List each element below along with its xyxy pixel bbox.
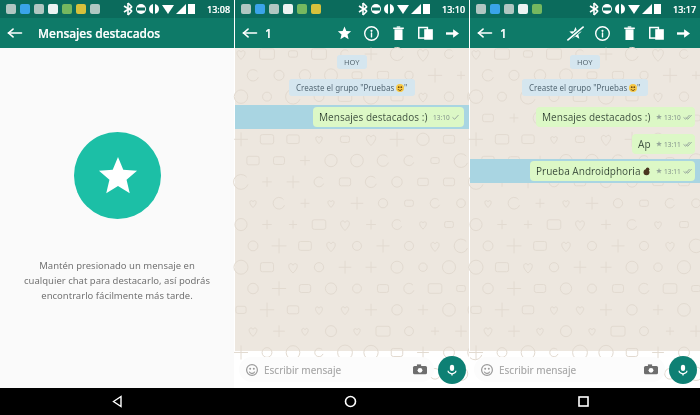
staticText: Mensajes destacados :) [319,110,428,124]
button[interactable]: Delete [616,20,642,46]
button[interactable]: Recents [467,388,700,415]
button[interactable]: Prueba Androidphoria [470,159,700,183]
button[interactable]: Escribir mensaje [474,357,665,382]
staticText: 13:11 [664,140,681,149]
button[interactable]: Star [331,20,357,46]
staticText: 13:08 [207,3,231,15]
button[interactable]: Escribir mensaje [239,357,434,382]
staticText: 13:17 [673,3,697,15]
staticText: HOY [344,57,360,67]
staticText: 1 [265,25,272,41]
button[interactable]: Mensajes destacados :) [235,105,469,129]
other: Camera [644,363,658,377]
button[interactable]: Delete [385,20,411,46]
button[interactable]: Mensajes destacados :) [470,105,700,129]
staticText: Ap [638,137,651,151]
button[interactable]: Back [0,18,30,48]
button[interactable]: Back [470,18,500,48]
staticText: 13:11 [664,167,681,176]
staticText: Mantén presionado un mensaje en cualquie… [18,259,216,302]
staticText: Creaste el grupo "Pruebas [296,82,395,93]
button[interactable]: Copy [412,20,438,46]
button[interactable]: Back [235,18,265,48]
button[interactable]: Unstar [562,20,588,46]
button[interactable]: Ap [470,132,700,156]
button[interactable]: Voice message [438,356,466,384]
staticText: HOY [577,57,593,67]
staticText: Mensajes destacados :) [542,110,651,124]
staticText: Creaste el grupo "Pruebas [529,82,628,93]
button[interactable]: Info [358,20,384,46]
staticText: 1 [500,25,507,41]
staticText: " [404,82,408,93]
staticText: 13:10 [664,113,681,122]
staticText: Escribir mensaje [264,363,342,377]
other: Camera [413,363,427,377]
staticText: Escribir mensaje [499,363,577,377]
button[interactable]: Voice message [669,356,697,384]
button[interactable]: Copy [643,20,669,46]
staticText: 13:10 [442,3,466,15]
staticText: Prueba Androidphoria [536,164,641,178]
button[interactable]: Forward [439,20,465,46]
button[interactable]: Back [0,388,234,415]
staticText: Mensajes destacados [38,25,161,41]
button[interactable]: Forward [670,20,696,46]
staticText: " [637,82,641,93]
staticText: 13:10 [433,113,450,122]
button[interactable]: Home [234,388,467,415]
button[interactable]: Info [589,20,615,46]
